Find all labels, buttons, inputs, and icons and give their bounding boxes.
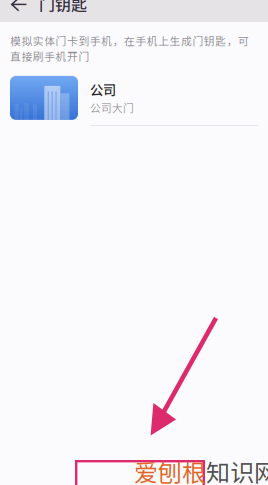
- staticText: 知识网: [206, 454, 268, 485]
- staticText: 公司: [90, 80, 116, 99]
- staticText: 公司大门: [90, 100, 134, 115]
- staticText: 门钥匙: [39, 0, 87, 16]
- button[interactable]: Back: [0, 0, 39, 22]
- staticText: 模拟实体门卡到手机，在手机上生成门钥匙，可直接刷手机开门: [10, 33, 249, 64]
- button[interactable]: 公司: [0, 64, 268, 126]
- staticText: 爱刨根: [134, 454, 206, 485]
